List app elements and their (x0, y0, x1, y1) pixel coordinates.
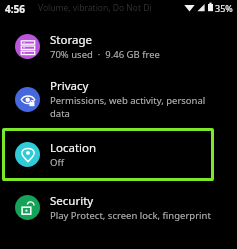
other: Security (15, 195, 40, 220)
staticText: Storage (50, 32, 92, 48)
staticText: Play Protect, screen lock, fingerprint (50, 209, 211, 222)
staticText: Privacy (50, 78, 89, 94)
other: Privacy (15, 87, 40, 112)
staticText: 4:56 (5, 2, 25, 16)
button[interactable]: Location (2, 128, 214, 181)
staticText: 35% (215, 2, 233, 14)
staticText: Location (50, 140, 97, 156)
button[interactable]: Security (0, 181, 237, 233)
staticText: Permissions, web activity, personal data (50, 94, 206, 120)
staticText: Off (50, 156, 64, 169)
other: Location (15, 142, 40, 167)
button[interactable]: Storage (0, 22, 237, 70)
button[interactable]: Privacy (0, 70, 237, 128)
other: Storage (15, 34, 40, 59)
staticText: Security (50, 193, 94, 209)
staticText: Volume, vibration, Do Not Di (38, 2, 152, 14)
staticText: 70% used · 9.46 GB free (50, 48, 160, 61)
